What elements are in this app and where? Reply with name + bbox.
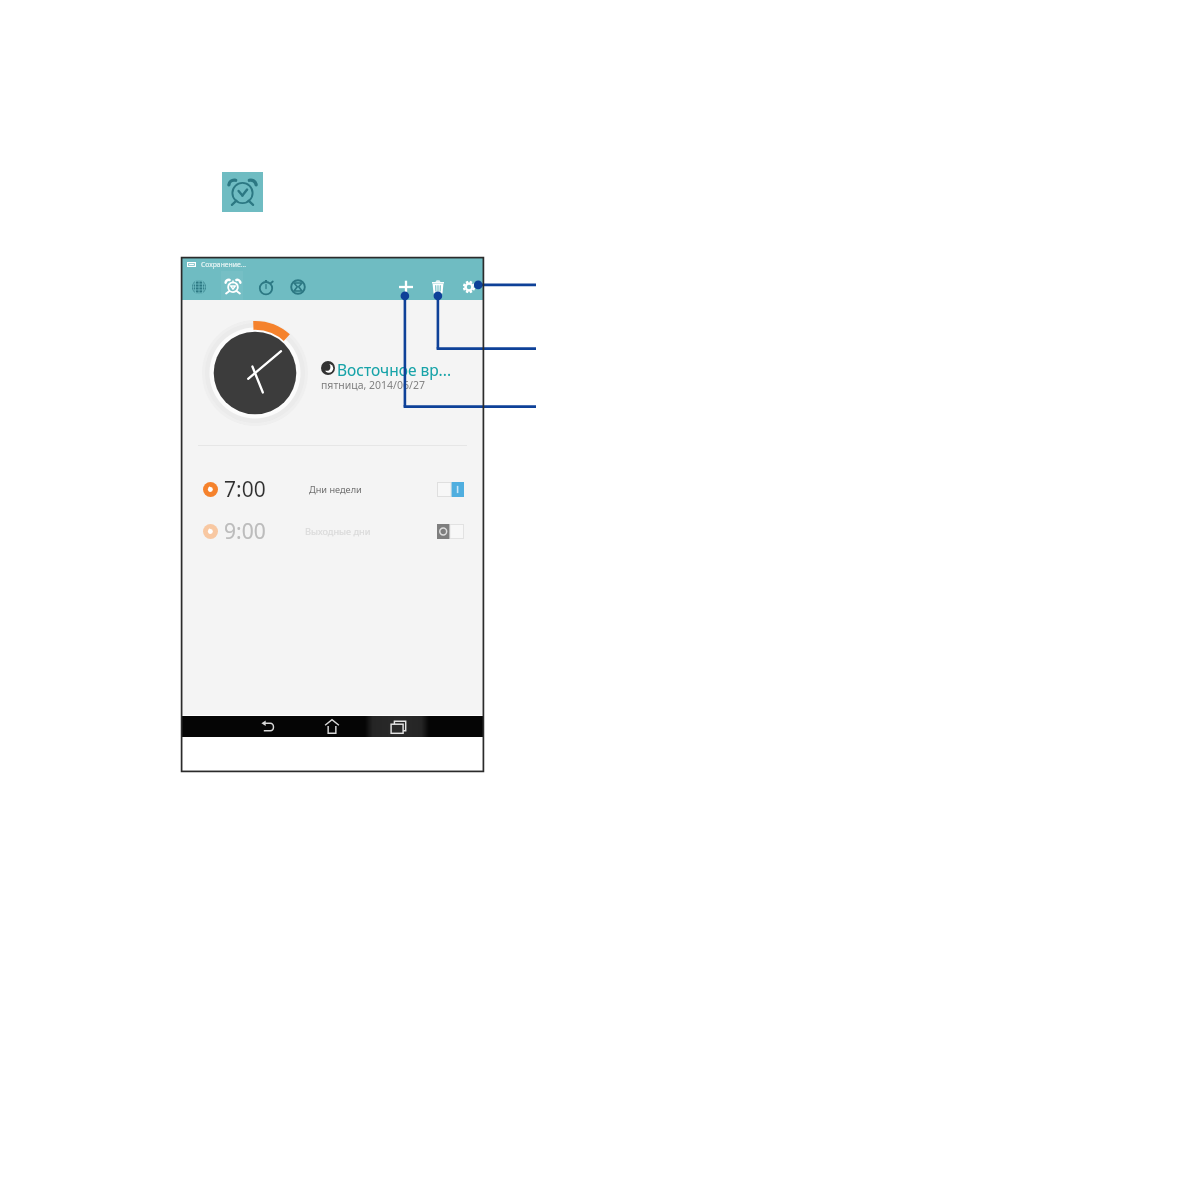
button[interactable]: 7:00 [182,469,483,509]
button[interactable]: Delete [424,273,452,301]
button[interactable]: Alarm app icon [222,172,263,212]
staticText: Восточное вр... [337,359,452,380]
staticText: Сохранение... [201,260,247,269]
button[interactable]: Home [320,716,344,737]
staticText: 7:00 [224,475,266,504]
button[interactable]: Settings [455,273,483,301]
staticText: 9:00 [224,517,266,546]
staticText: Дни недели [309,483,362,496]
button[interactable]: Back [256,716,280,737]
staticText: Выходные дни [305,525,371,538]
button[interactable]: Timer [284,273,312,301]
button[interactable]: World clock [185,273,213,301]
button[interactable]: 9:00 [182,511,483,551]
button[interactable]: Toggle alarm 9:00 [437,524,464,539]
staticText: пятница, 2014/06/27 [321,378,425,392]
button[interactable]: Recent apps [386,716,410,737]
button[interactable]: Toggle alarm 7:00 [437,482,464,497]
button[interactable]: Alarm [219,273,247,301]
button[interactable]: Add alarm [392,273,420,301]
button[interactable]: Stopwatch [252,273,280,301]
